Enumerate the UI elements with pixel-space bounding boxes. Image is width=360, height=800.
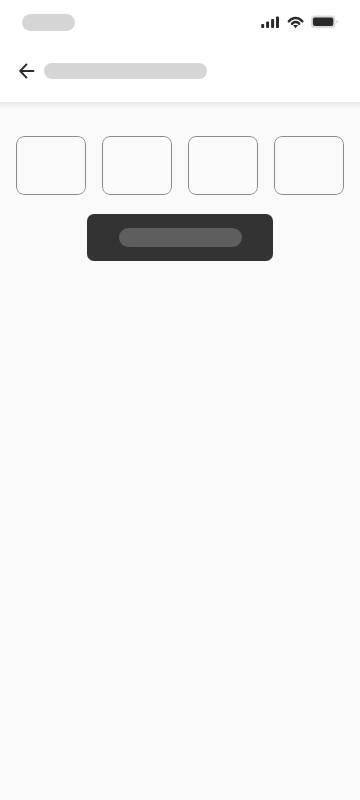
button[interactable]: Hint xyxy=(87,214,273,261)
button[interactable]: Digit 1 xyxy=(16,136,86,195)
button[interactable]: Navigate up xyxy=(4,49,48,93)
button[interactable]: Digit 2 xyxy=(102,136,172,195)
button[interactable]: Digit 3 xyxy=(188,136,258,195)
button[interactable]: Digit 4 xyxy=(274,136,344,195)
